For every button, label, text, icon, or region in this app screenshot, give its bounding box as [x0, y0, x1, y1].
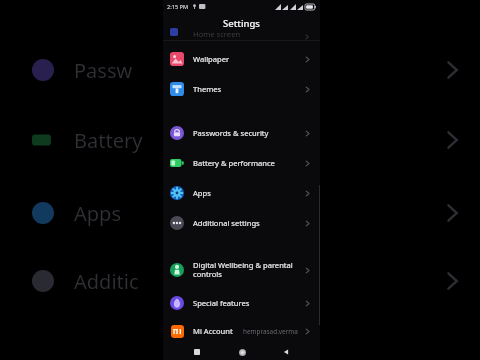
button[interactable]: Home: [232, 344, 252, 360]
staticText: Digital Wellbeing & parental controls: [193, 260, 303, 280]
staticText: Settings: [223, 17, 260, 30]
staticText: Apps: [193, 188, 211, 198]
button[interactable]: Battery & performance: [163, 148, 320, 178]
button[interactable]: Back: [276, 344, 296, 360]
staticText: Additional settings: [193, 218, 260, 228]
staticText: 2:15 PM: [167, 3, 189, 11]
staticText: Battery & performance: [193, 158, 275, 168]
staticText: Mi Account: [193, 326, 233, 336]
staticText: Wallpaper: [193, 54, 230, 64]
button[interactable]: Wallpaper: [163, 44, 320, 74]
button[interactable]: Recents: [187, 344, 207, 360]
button[interactable]: Mi Account: [163, 318, 320, 344]
staticText: Additic: [74, 268, 139, 295]
staticText: Themes: [193, 84, 222, 94]
button[interactable]: Passwords & security: [163, 118, 320, 148]
staticText: Battery: [74, 127, 143, 154]
staticText: hemprasad.verma: [243, 327, 298, 336]
button[interactable]: Apps: [163, 178, 320, 208]
button[interactable]: Themes: [163, 74, 320, 104]
staticText: Passwords & security: [193, 128, 269, 138]
button[interactable]: Special features: [163, 288, 320, 318]
staticText: Special features: [193, 298, 250, 308]
staticText: Apps: [74, 200, 121, 227]
staticText: Home screen: [193, 29, 241, 37]
button[interactable]: Digital Wellbeing & parental controls: [163, 252, 320, 288]
button[interactable]: Additional settings: [163, 208, 320, 238]
staticText: Passw: [74, 57, 133, 84]
